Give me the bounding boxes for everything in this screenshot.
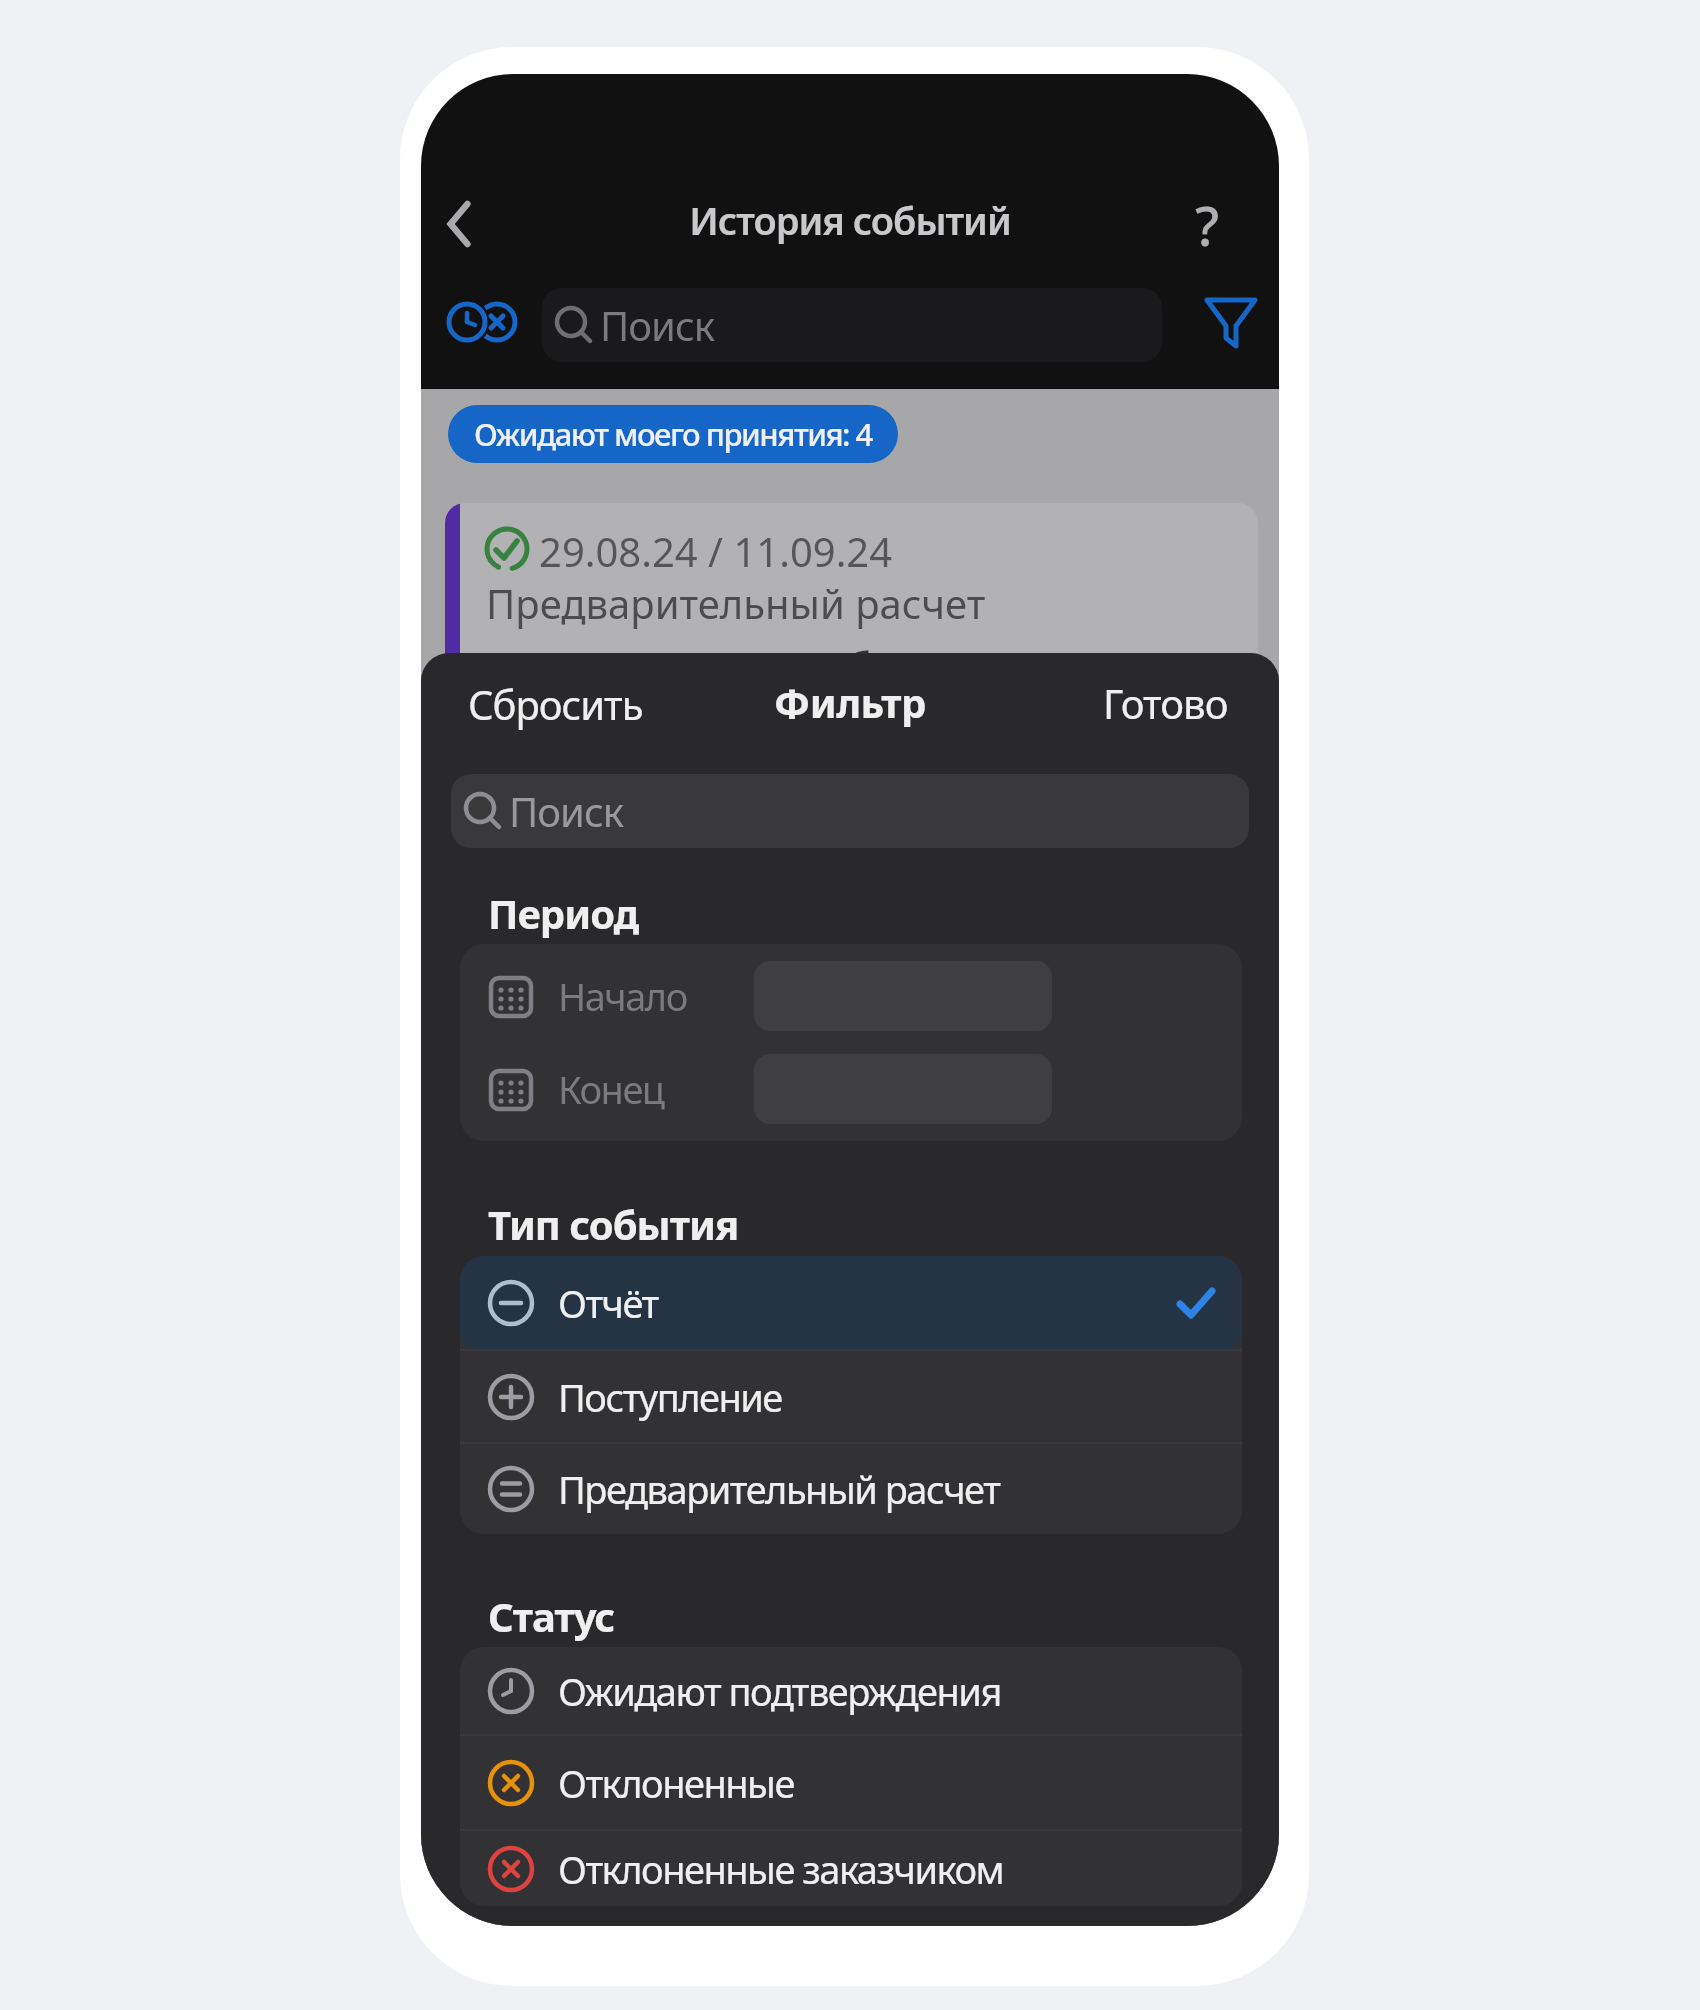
staticText: Поиск bbox=[509, 784, 623, 838]
staticText: Тип события bbox=[488, 1197, 739, 1251]
button[interactable]: Ожидают подтверждения bbox=[460, 1647, 1242, 1734]
staticText: Предварительный расчет bbox=[486, 576, 986, 630]
staticText: Отчёт bbox=[558, 1277, 658, 1329]
button[interactable]: Ожидают моего принятия: 4 bbox=[448, 405, 898, 463]
button[interactable]: Отклоненные bbox=[460, 1736, 1242, 1829]
button[interactable]: Готово bbox=[1053, 663, 1253, 743]
staticText: 29.08.24 / 11.09.24 bbox=[539, 524, 893, 578]
button[interactable]: Отклоненные заказчиком bbox=[460, 1831, 1242, 1906]
button[interactable]: 29.08.24 / 11.09.24 bbox=[445, 503, 1258, 679]
staticText: Период bbox=[488, 886, 639, 940]
button[interactable]: Поиск bbox=[542, 288, 1162, 362]
button[interactable] bbox=[445, 300, 523, 344]
button[interactable]: Отчёт bbox=[460, 1256, 1242, 1349]
staticText: Поиск bbox=[600, 298, 714, 352]
staticText: Отклоненные заказчиком bbox=[558, 1843, 1004, 1895]
staticText: Предварительный расчет bbox=[558, 1463, 1000, 1515]
staticText: Фильтр bbox=[421, 675, 1279, 729]
button[interactable] bbox=[431, 196, 487, 252]
staticText: Начало bbox=[558, 970, 687, 1022]
staticText: Статус bbox=[488, 1589, 615, 1643]
button[interactable]: ? bbox=[1195, 188, 1220, 262]
button[interactable]: Сбросить bbox=[468, 677, 643, 731]
staticText: Ожидают моего принятия: 4 bbox=[474, 413, 872, 455]
staticText: Конец bbox=[558, 1063, 664, 1115]
staticText: Отклоненные bbox=[558, 1757, 794, 1809]
button[interactable]: Поиск bbox=[451, 774, 1249, 848]
button[interactable]: Предварительный расчет bbox=[460, 1444, 1242, 1534]
button[interactable]: Поступление bbox=[460, 1351, 1242, 1442]
button[interactable] bbox=[1203, 294, 1259, 354]
staticText: Готово bbox=[1103, 676, 1228, 730]
staticText: Штукатурные работы bbox=[486, 637, 955, 679]
staticText: Поступление bbox=[558, 1371, 782, 1423]
staticText: История событий bbox=[421, 194, 1279, 246]
staticText: Ожидают подтверждения bbox=[558, 1665, 1001, 1717]
